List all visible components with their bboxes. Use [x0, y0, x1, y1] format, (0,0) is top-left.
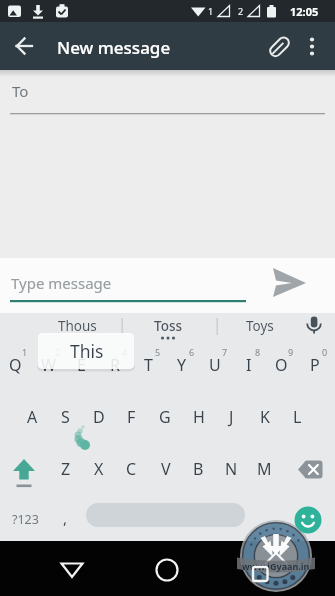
- button[interactable]: R: [98, 343, 131, 387]
- button[interactable]: N: [215, 447, 248, 491]
- staticText: C: [126, 458, 137, 480]
- staticText: 7: [222, 346, 228, 358]
- staticText: U: [209, 354, 221, 376]
- staticText: T: [144, 354, 153, 376]
- button[interactable]: Thous: [37, 315, 117, 337]
- staticText: 12:05: [290, 4, 319, 19]
- button[interactable]: E: [65, 343, 98, 387]
- button[interactable]: [290, 502, 326, 538]
- staticText: This: [70, 339, 104, 363]
- button[interactable]: ?123: [4, 500, 46, 538]
- staticText: Thous: [58, 317, 97, 335]
- button[interactable]: H: [182, 395, 215, 439]
- staticText: Q: [9, 354, 22, 376]
- button[interactable]: [266, 258, 322, 308]
- staticText: E: [77, 354, 86, 376]
- staticText: P: [310, 354, 320, 376]
- staticText: A: [27, 406, 38, 428]
- button[interactable]: Q: [0, 343, 32, 387]
- staticText: ,: [63, 508, 68, 528]
- button[interactable]: J: [215, 395, 248, 439]
- button[interactable]: [292, 447, 332, 491]
- button[interactable]: P: [298, 343, 331, 387]
- button[interactable]: O: [265, 343, 298, 387]
- staticText: 8: [255, 346, 261, 358]
- staticText: 9: [288, 346, 294, 358]
- staticText: M: [257, 458, 272, 480]
- button[interactable]: G: [148, 395, 181, 439]
- button[interactable]: [147, 548, 187, 592]
- button[interactable]: F: [115, 395, 148, 439]
- staticText: Y: [177, 354, 187, 376]
- staticText: W: [41, 354, 56, 376]
- button[interactable]: Toys: [220, 315, 300, 337]
- button[interactable]: [0, 258, 250, 308]
- staticText: V: [161, 458, 171, 480]
- staticText: To: [12, 81, 29, 101]
- button[interactable]: [296, 313, 335, 339]
- staticText: 5: [155, 346, 161, 358]
- staticText: R: [110, 354, 120, 376]
- button[interactable]: [6, 28, 42, 64]
- staticText: N: [225, 458, 238, 480]
- button[interactable]: L: [281, 395, 314, 439]
- staticText: D: [93, 406, 105, 428]
- staticText: 3: [89, 346, 95, 358]
- staticText: Z: [61, 458, 71, 480]
- button[interactable]: B: [182, 447, 215, 491]
- staticText: L: [293, 406, 302, 428]
- staticText: I: [246, 354, 252, 376]
- button[interactable]: [299, 29, 325, 65]
- staticText: 1: [22, 346, 28, 358]
- staticText: G: [159, 406, 171, 428]
- button[interactable]: [0, 70, 335, 115]
- staticText: 2: [238, 5, 244, 17]
- staticText: Toss: [154, 317, 183, 335]
- staticText: X: [94, 458, 104, 480]
- button[interactable]: Z: [49, 447, 82, 491]
- staticText: K: [260, 406, 270, 428]
- button[interactable]: K: [248, 395, 281, 439]
- button[interactable]: D: [82, 395, 115, 439]
- button[interactable]: C: [115, 447, 148, 491]
- button[interactable]: [0, 494, 44, 538]
- button[interactable]: W: [32, 343, 65, 387]
- button[interactable]: Y: [165, 343, 198, 387]
- staticText: 2: [55, 346, 61, 358]
- staticText: www.iGyaan.in: [242, 560, 310, 572]
- button[interactable]: A: [16, 395, 49, 439]
- staticText: 6: [189, 346, 195, 358]
- button[interactable]: I: [232, 343, 265, 387]
- staticText: New message: [57, 36, 171, 59]
- staticText: Toys: [246, 317, 274, 335]
- staticText: 0: [322, 346, 328, 358]
- staticText: J: [229, 406, 234, 428]
- staticText: F: [127, 406, 136, 428]
- button[interactable]: [4, 447, 44, 491]
- button[interactable]: U: [198, 343, 231, 387]
- staticText: B: [193, 458, 204, 480]
- staticText: S: [61, 406, 70, 428]
- staticText: O: [275, 354, 288, 376]
- button[interactable]: S: [49, 395, 82, 439]
- button[interactable]: [85, 498, 236, 530]
- staticText: ?123: [12, 511, 39, 528]
- button[interactable]: [52, 548, 92, 592]
- button[interactable]: X: [82, 447, 115, 491]
- button[interactable]: [240, 548, 280, 592]
- button[interactable]: This: [38, 334, 135, 368]
- button[interactable]: Toss: [128, 315, 208, 337]
- staticText: 4: [122, 346, 128, 358]
- button[interactable]: T: [132, 343, 165, 387]
- staticText: 1: [208, 5, 214, 17]
- button[interactable]: M: [248, 447, 281, 491]
- button[interactable]: [262, 29, 296, 65]
- button[interactable]: ,: [50, 499, 80, 537]
- staticText: Type message: [11, 273, 112, 293]
- staticText: H: [193, 406, 205, 428]
- button[interactable]: V: [149, 447, 182, 491]
